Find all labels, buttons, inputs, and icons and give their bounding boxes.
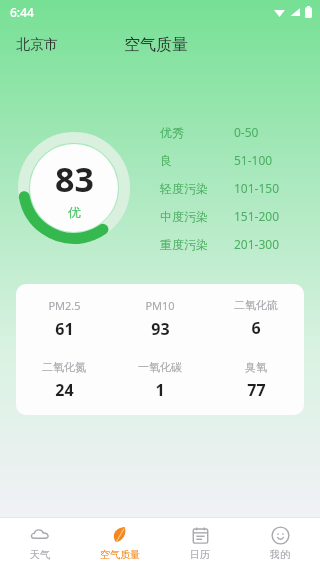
staticText: 6 (251, 317, 261, 339)
button[interactable]: 日历 (160, 518, 240, 568)
staticText: 6:44 (10, 4, 34, 20)
staticText: 二氧化硫 (234, 298, 278, 312)
staticText: 天气 (30, 548, 50, 561)
staticText: 中度污染 (160, 209, 234, 224)
staticText: PM10 (145, 298, 175, 313)
button[interactable]: 空气质量 (80, 518, 160, 568)
staticText: 良 (160, 153, 234, 168)
staticText: 空气质量 (124, 35, 188, 55)
staticText: 轻度污染 (160, 181, 234, 196)
staticText: 61 (55, 318, 74, 340)
button[interactable]: 天气 (0, 518, 80, 568)
staticText: 83 (55, 156, 94, 202)
staticText: 一氧化碳 (138, 360, 182, 374)
staticText: 优秀 (160, 125, 234, 140)
staticText: 我的 (270, 548, 290, 561)
staticText: 二氧化氮 (42, 360, 86, 374)
staticText: 臭氧 (245, 360, 267, 374)
staticText: 0-50 (234, 124, 259, 140)
staticText: 93 (151, 318, 170, 340)
staticText: 空气质量 (100, 548, 140, 561)
staticText: 日历 (190, 548, 210, 561)
staticText: 201-300 (234, 236, 280, 252)
staticText: 1 (155, 379, 165, 401)
staticText: 24 (55, 379, 74, 401)
staticText: 77 (247, 379, 266, 401)
staticText: 101-150 (234, 180, 280, 196)
staticText: 51-100 (234, 152, 273, 168)
staticText: 重度污染 (160, 237, 234, 252)
button[interactable]: PM2.5 (16, 284, 304, 415)
button[interactable]: 我的 (240, 518, 320, 568)
staticText: 优 (68, 204, 81, 220)
staticText: 151-200 (234, 208, 280, 224)
button[interactable]: 北京市 (16, 36, 58, 54)
staticText: PM2.5 (48, 298, 81, 313)
